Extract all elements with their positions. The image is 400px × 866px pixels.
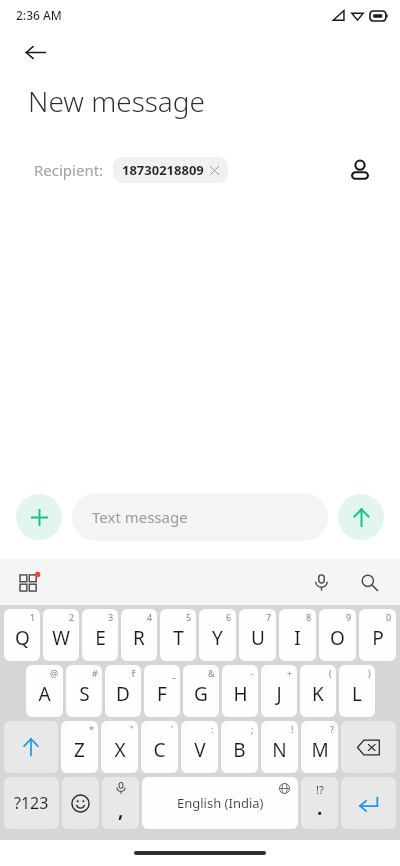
button[interactable]: ; bbox=[221, 721, 258, 773]
button[interactable]: : bbox=[181, 721, 218, 773]
button[interactable]: 7 bbox=[239, 609, 276, 661]
button[interactable]: - bbox=[222, 665, 258, 717]
staticText: B bbox=[233, 737, 246, 763]
button[interactable]: @ bbox=[26, 665, 63, 717]
staticText: ! bbox=[291, 723, 294, 735]
staticText: E bbox=[95, 625, 106, 651]
staticText: N bbox=[272, 737, 287, 763]
button[interactable]: 9 bbox=[319, 609, 356, 661]
staticText: * bbox=[89, 723, 94, 735]
button[interactable]: 6 bbox=[199, 609, 236, 661]
button[interactable]: Choose contact bbox=[342, 152, 378, 188]
button[interactable]: 1 bbox=[4, 609, 40, 661]
staticText: D bbox=[116, 681, 130, 707]
staticText: K bbox=[312, 681, 324, 707]
staticText: V bbox=[194, 737, 206, 763]
button[interactable]: ? bbox=[301, 721, 338, 773]
staticText: U bbox=[251, 625, 265, 651]
staticText: Z bbox=[74, 737, 85, 763]
button[interactable]: Comma bbox=[102, 777, 139, 829]
staticText: + bbox=[287, 667, 293, 679]
button[interactable]: 4 bbox=[121, 609, 157, 661]
button[interactable]: * bbox=[61, 721, 98, 773]
staticText: ) bbox=[368, 667, 371, 679]
button[interactable]: Space bbox=[142, 777, 298, 829]
button[interactable]: 2 bbox=[43, 609, 79, 661]
staticText: " bbox=[130, 723, 134, 735]
staticText: Recipient: bbox=[34, 160, 104, 180]
button[interactable]: 5 bbox=[160, 609, 196, 661]
button[interactable]: + bbox=[261, 665, 297, 717]
button[interactable]: 0 bbox=[359, 609, 396, 661]
staticText: I bbox=[294, 625, 301, 651]
button[interactable]: ( bbox=[300, 665, 336, 717]
staticText: 7 bbox=[266, 611, 272, 623]
staticText: O bbox=[330, 625, 345, 651]
staticText: C bbox=[153, 737, 166, 763]
staticText: R bbox=[133, 625, 145, 651]
staticText: ( bbox=[329, 667, 332, 679]
button[interactable]: Search bbox=[352, 565, 386, 599]
staticText: !? bbox=[316, 782, 324, 797]
staticText: - bbox=[251, 667, 254, 679]
button[interactable]: ?123 bbox=[4, 777, 59, 829]
staticText: 3 bbox=[108, 611, 114, 623]
button[interactable]: Text message bbox=[72, 493, 328, 541]
staticText: New message bbox=[28, 82, 206, 120]
staticText: J bbox=[276, 681, 282, 707]
staticText: X bbox=[114, 737, 126, 763]
button[interactable]: Voice input bbox=[304, 565, 338, 599]
button[interactable]: _ bbox=[144, 665, 180, 717]
staticText: _ bbox=[172, 667, 176, 679]
button[interactable]: & bbox=[183, 665, 219, 717]
staticText: Y bbox=[212, 625, 223, 651]
button[interactable]: Backspace bbox=[341, 721, 396, 773]
staticText: ?123 bbox=[14, 792, 49, 814]
button[interactable]: 18730218809 bbox=[113, 157, 228, 183]
staticText: 5 bbox=[186, 611, 192, 623]
button[interactable]: ₹ bbox=[105, 665, 141, 717]
staticText: . bbox=[317, 795, 323, 821]
staticText: ; bbox=[251, 723, 254, 735]
staticText: 18730218809 bbox=[122, 161, 204, 179]
button[interactable]: Period bbox=[301, 777, 338, 829]
staticText: ₹ bbox=[131, 667, 137, 679]
button[interactable]: 3 bbox=[82, 609, 118, 661]
staticText: 6 bbox=[226, 611, 232, 623]
button[interactable]: Toolbox bbox=[12, 565, 46, 599]
button[interactable]: " bbox=[101, 721, 138, 773]
staticText: P bbox=[372, 625, 384, 651]
staticText: 9 bbox=[346, 611, 352, 623]
button[interactable]: Add attachment bbox=[16, 494, 62, 540]
button[interactable]: ' bbox=[141, 721, 178, 773]
staticText: 2 bbox=[69, 611, 75, 623]
button[interactable]: Shift bbox=[4, 721, 58, 773]
staticText: F bbox=[157, 681, 167, 707]
button[interactable]: Back bbox=[18, 35, 52, 69]
staticText: G bbox=[194, 681, 208, 707]
staticText: L bbox=[352, 681, 362, 707]
staticText: ? bbox=[330, 723, 334, 735]
staticText: : bbox=[211, 723, 214, 735]
staticText: T bbox=[173, 625, 184, 651]
staticText: A bbox=[38, 681, 51, 707]
staticText: 4 bbox=[147, 611, 153, 623]
button[interactable]: Enter bbox=[341, 777, 396, 829]
staticText: # bbox=[92, 667, 98, 679]
staticText: M bbox=[311, 737, 329, 763]
staticText: 2:36 AM bbox=[16, 7, 62, 23]
staticText: ' bbox=[171, 723, 174, 735]
button[interactable]: # bbox=[66, 665, 102, 717]
staticText: 0 bbox=[386, 611, 392, 623]
staticText: @ bbox=[50, 667, 59, 679]
button[interactable]: 8 bbox=[279, 609, 316, 661]
staticText: 1 bbox=[30, 611, 36, 623]
staticText: S bbox=[79, 681, 90, 707]
staticText: , bbox=[118, 797, 124, 823]
staticText: Q bbox=[15, 625, 30, 651]
button[interactable]: ! bbox=[261, 721, 298, 773]
button[interactable]: ) bbox=[339, 665, 375, 717]
button[interactable]: Send bbox=[338, 494, 384, 540]
staticText: English (India) bbox=[177, 794, 264, 812]
button[interactable]: Emoji bbox=[62, 777, 99, 829]
